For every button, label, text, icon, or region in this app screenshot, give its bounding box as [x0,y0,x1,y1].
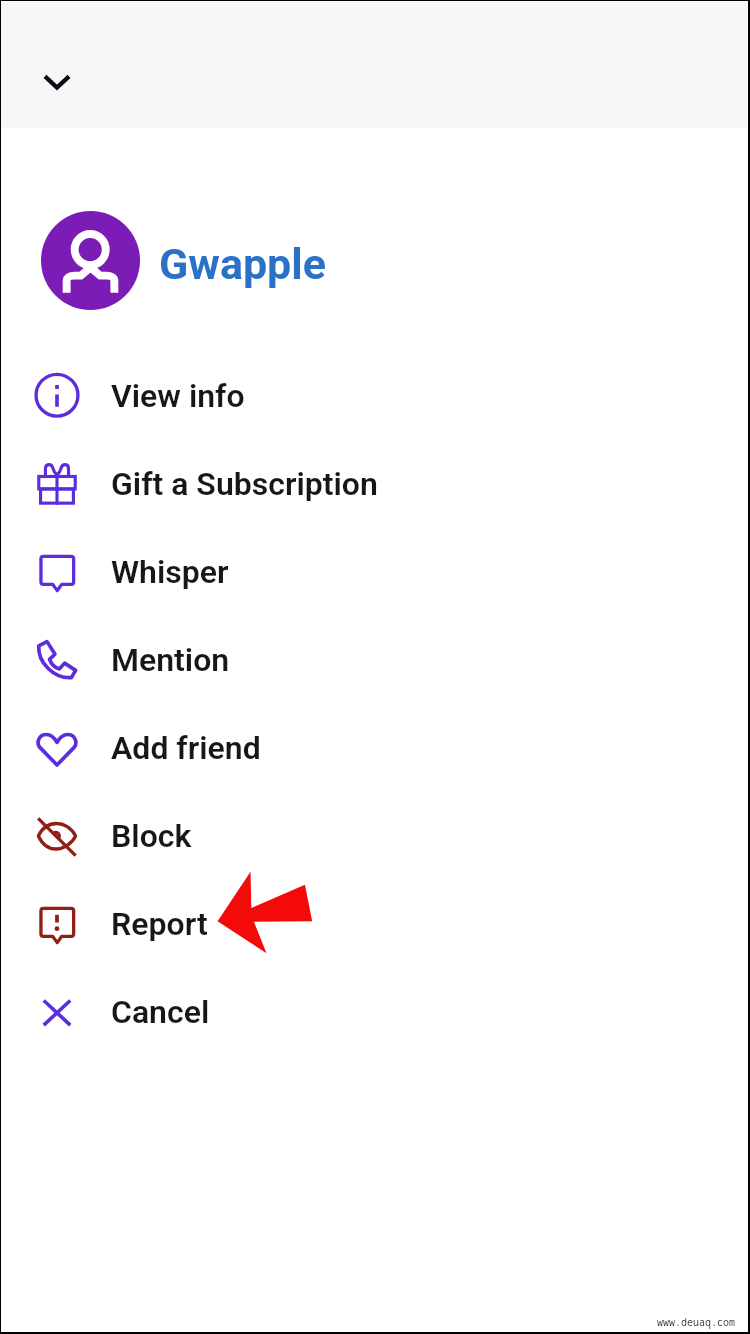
staticText: View info [111,377,245,415]
button[interactable]: Gift a Subscription [1,439,748,527]
staticText: Add friend [111,729,261,767]
button[interactable]: Whisper [1,527,748,615]
staticText: www.deuaq.com [657,1315,735,1329]
button[interactable]: Mention [1,615,748,703]
staticText: Report [111,905,208,943]
staticText: Gift a Subscription [111,465,378,503]
button[interactable]: View info [1,351,748,439]
button[interactable]: Report [1,879,748,967]
staticText: Block [111,817,192,855]
staticText: Whisper [111,553,229,591]
button[interactable]: Collapse [28,52,86,110]
button[interactable]: Add friend [1,703,748,791]
staticText: Mention [111,641,230,679]
staticText: Gwapple [159,239,326,289]
staticText: Cancel [111,993,210,1031]
button[interactable]: Block [1,791,748,879]
button[interactable]: Cancel [1,967,748,1055]
